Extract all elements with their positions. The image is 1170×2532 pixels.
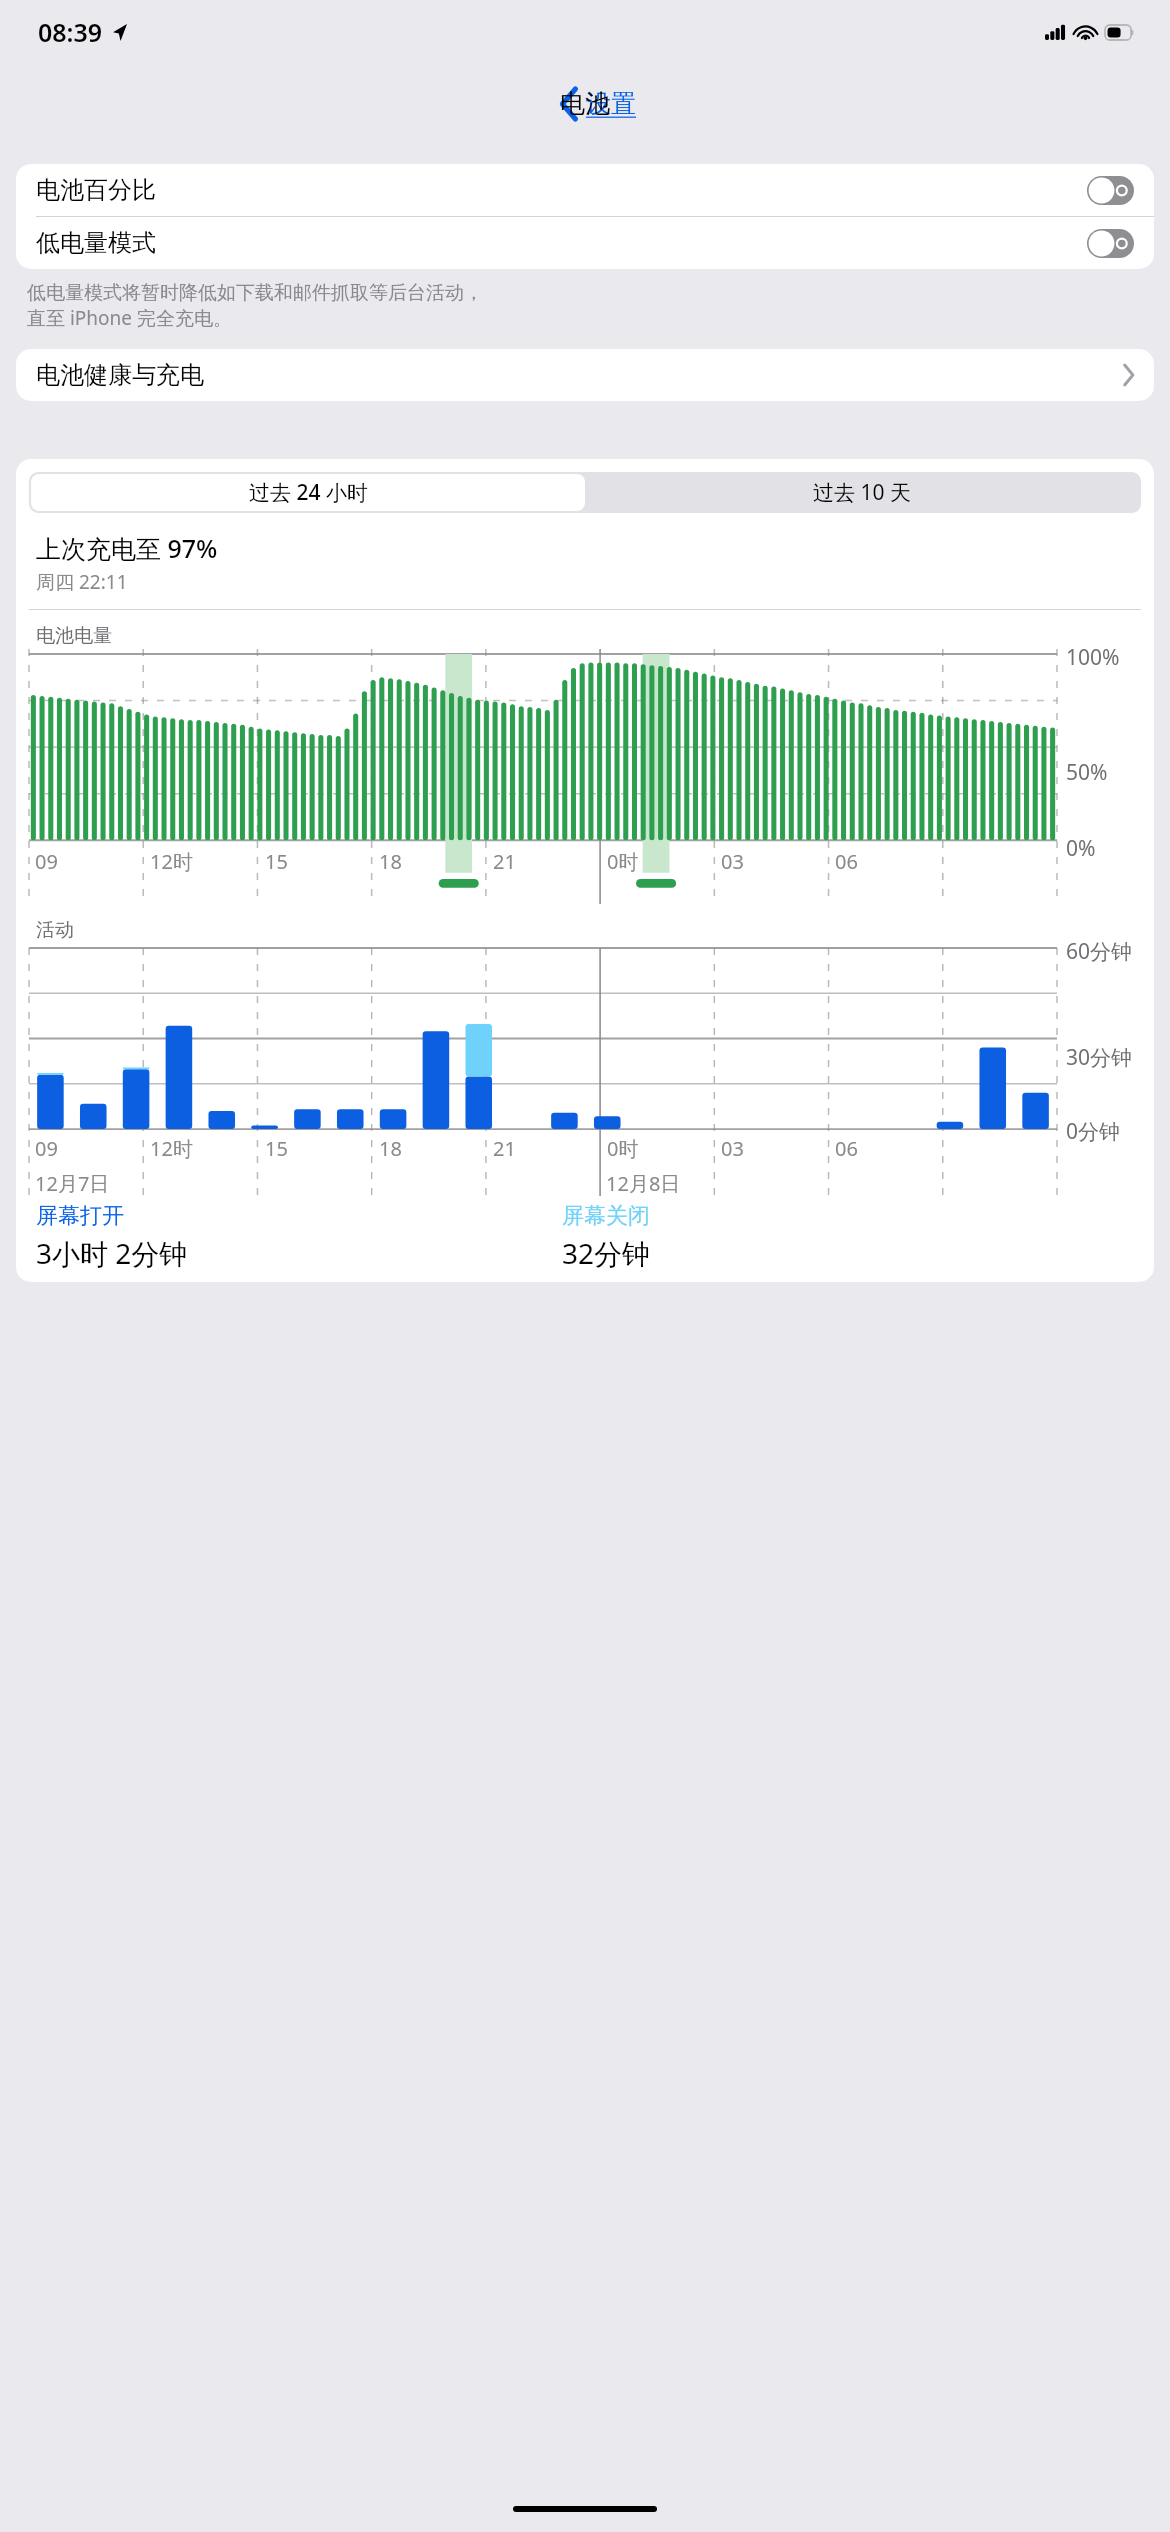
staticText: 电池 bbox=[560, 88, 610, 119]
staticText: 12月7日 bbox=[35, 1170, 110, 1196]
staticText: 电池电量 bbox=[36, 624, 112, 648]
staticText: 活动 bbox=[36, 918, 74, 942]
staticText: 09 bbox=[35, 1135, 58, 1162]
staticText: 0时 bbox=[607, 848, 639, 875]
staticText: 屏幕关闭 bbox=[562, 1202, 650, 1230]
button[interactable]: 低电量模式 bbox=[16, 217, 1154, 269]
staticText: 06 bbox=[835, 1135, 858, 1162]
staticText: 18 bbox=[379, 1135, 402, 1162]
button[interactable]: 电池百分比 bbox=[16, 164, 1154, 216]
staticText: 3小时 2分钟 bbox=[36, 1234, 188, 1272]
staticText: 设置 bbox=[586, 88, 636, 119]
staticText: 屏幕打开 bbox=[36, 1202, 124, 1230]
staticText: 直至 iPhone 完全充电。 bbox=[27, 305, 232, 331]
staticText: 上次充电至 97% bbox=[36, 531, 218, 565]
staticText: 18 bbox=[379, 848, 402, 875]
staticText: 60分钟 bbox=[1066, 937, 1133, 966]
staticText: 0分钟 bbox=[1066, 1117, 1121, 1146]
staticText: 12时 bbox=[150, 848, 193, 875]
staticText: 过去 10 天 bbox=[813, 478, 911, 507]
staticText: 03 bbox=[721, 848, 744, 875]
staticText: 电池百分比 bbox=[36, 175, 156, 205]
staticText: 09 bbox=[35, 848, 58, 875]
staticText: 15 bbox=[265, 848, 288, 875]
staticText: 100% bbox=[1066, 643, 1120, 672]
staticText: 06 bbox=[835, 848, 858, 875]
staticText: 32分钟 bbox=[562, 1234, 651, 1272]
staticText: 低电量模式 bbox=[36, 228, 156, 258]
staticText: 电池健康与充电 bbox=[36, 360, 204, 390]
staticText: 21 bbox=[493, 1135, 516, 1162]
staticText: 12月8日 bbox=[606, 1170, 681, 1196]
button[interactable]: 设置 bbox=[555, 82, 642, 125]
button[interactable]: 电池健康与充电 bbox=[16, 349, 1154, 401]
staticText: 30分钟 bbox=[1066, 1043, 1133, 1072]
staticText: 50% bbox=[1066, 758, 1108, 787]
staticText: 03 bbox=[721, 1135, 744, 1162]
staticText: 周四 22:11 bbox=[36, 569, 128, 595]
staticText: 低电量模式将暂时降低如下载和邮件抓取等后台活动， bbox=[27, 281, 483, 305]
staticText: 0时 bbox=[607, 1135, 639, 1162]
staticText: 21 bbox=[493, 848, 516, 875]
button[interactable]: 过去 10 天 bbox=[585, 474, 1139, 511]
staticText: 12时 bbox=[150, 1135, 193, 1162]
staticText: 15 bbox=[265, 1135, 288, 1162]
staticText: 过去 24 小时 bbox=[249, 478, 368, 507]
button[interactable]: 过去 24 小时 bbox=[31, 474, 585, 511]
staticText: 0% bbox=[1066, 834, 1096, 863]
staticText: 08:39 bbox=[38, 15, 103, 49]
